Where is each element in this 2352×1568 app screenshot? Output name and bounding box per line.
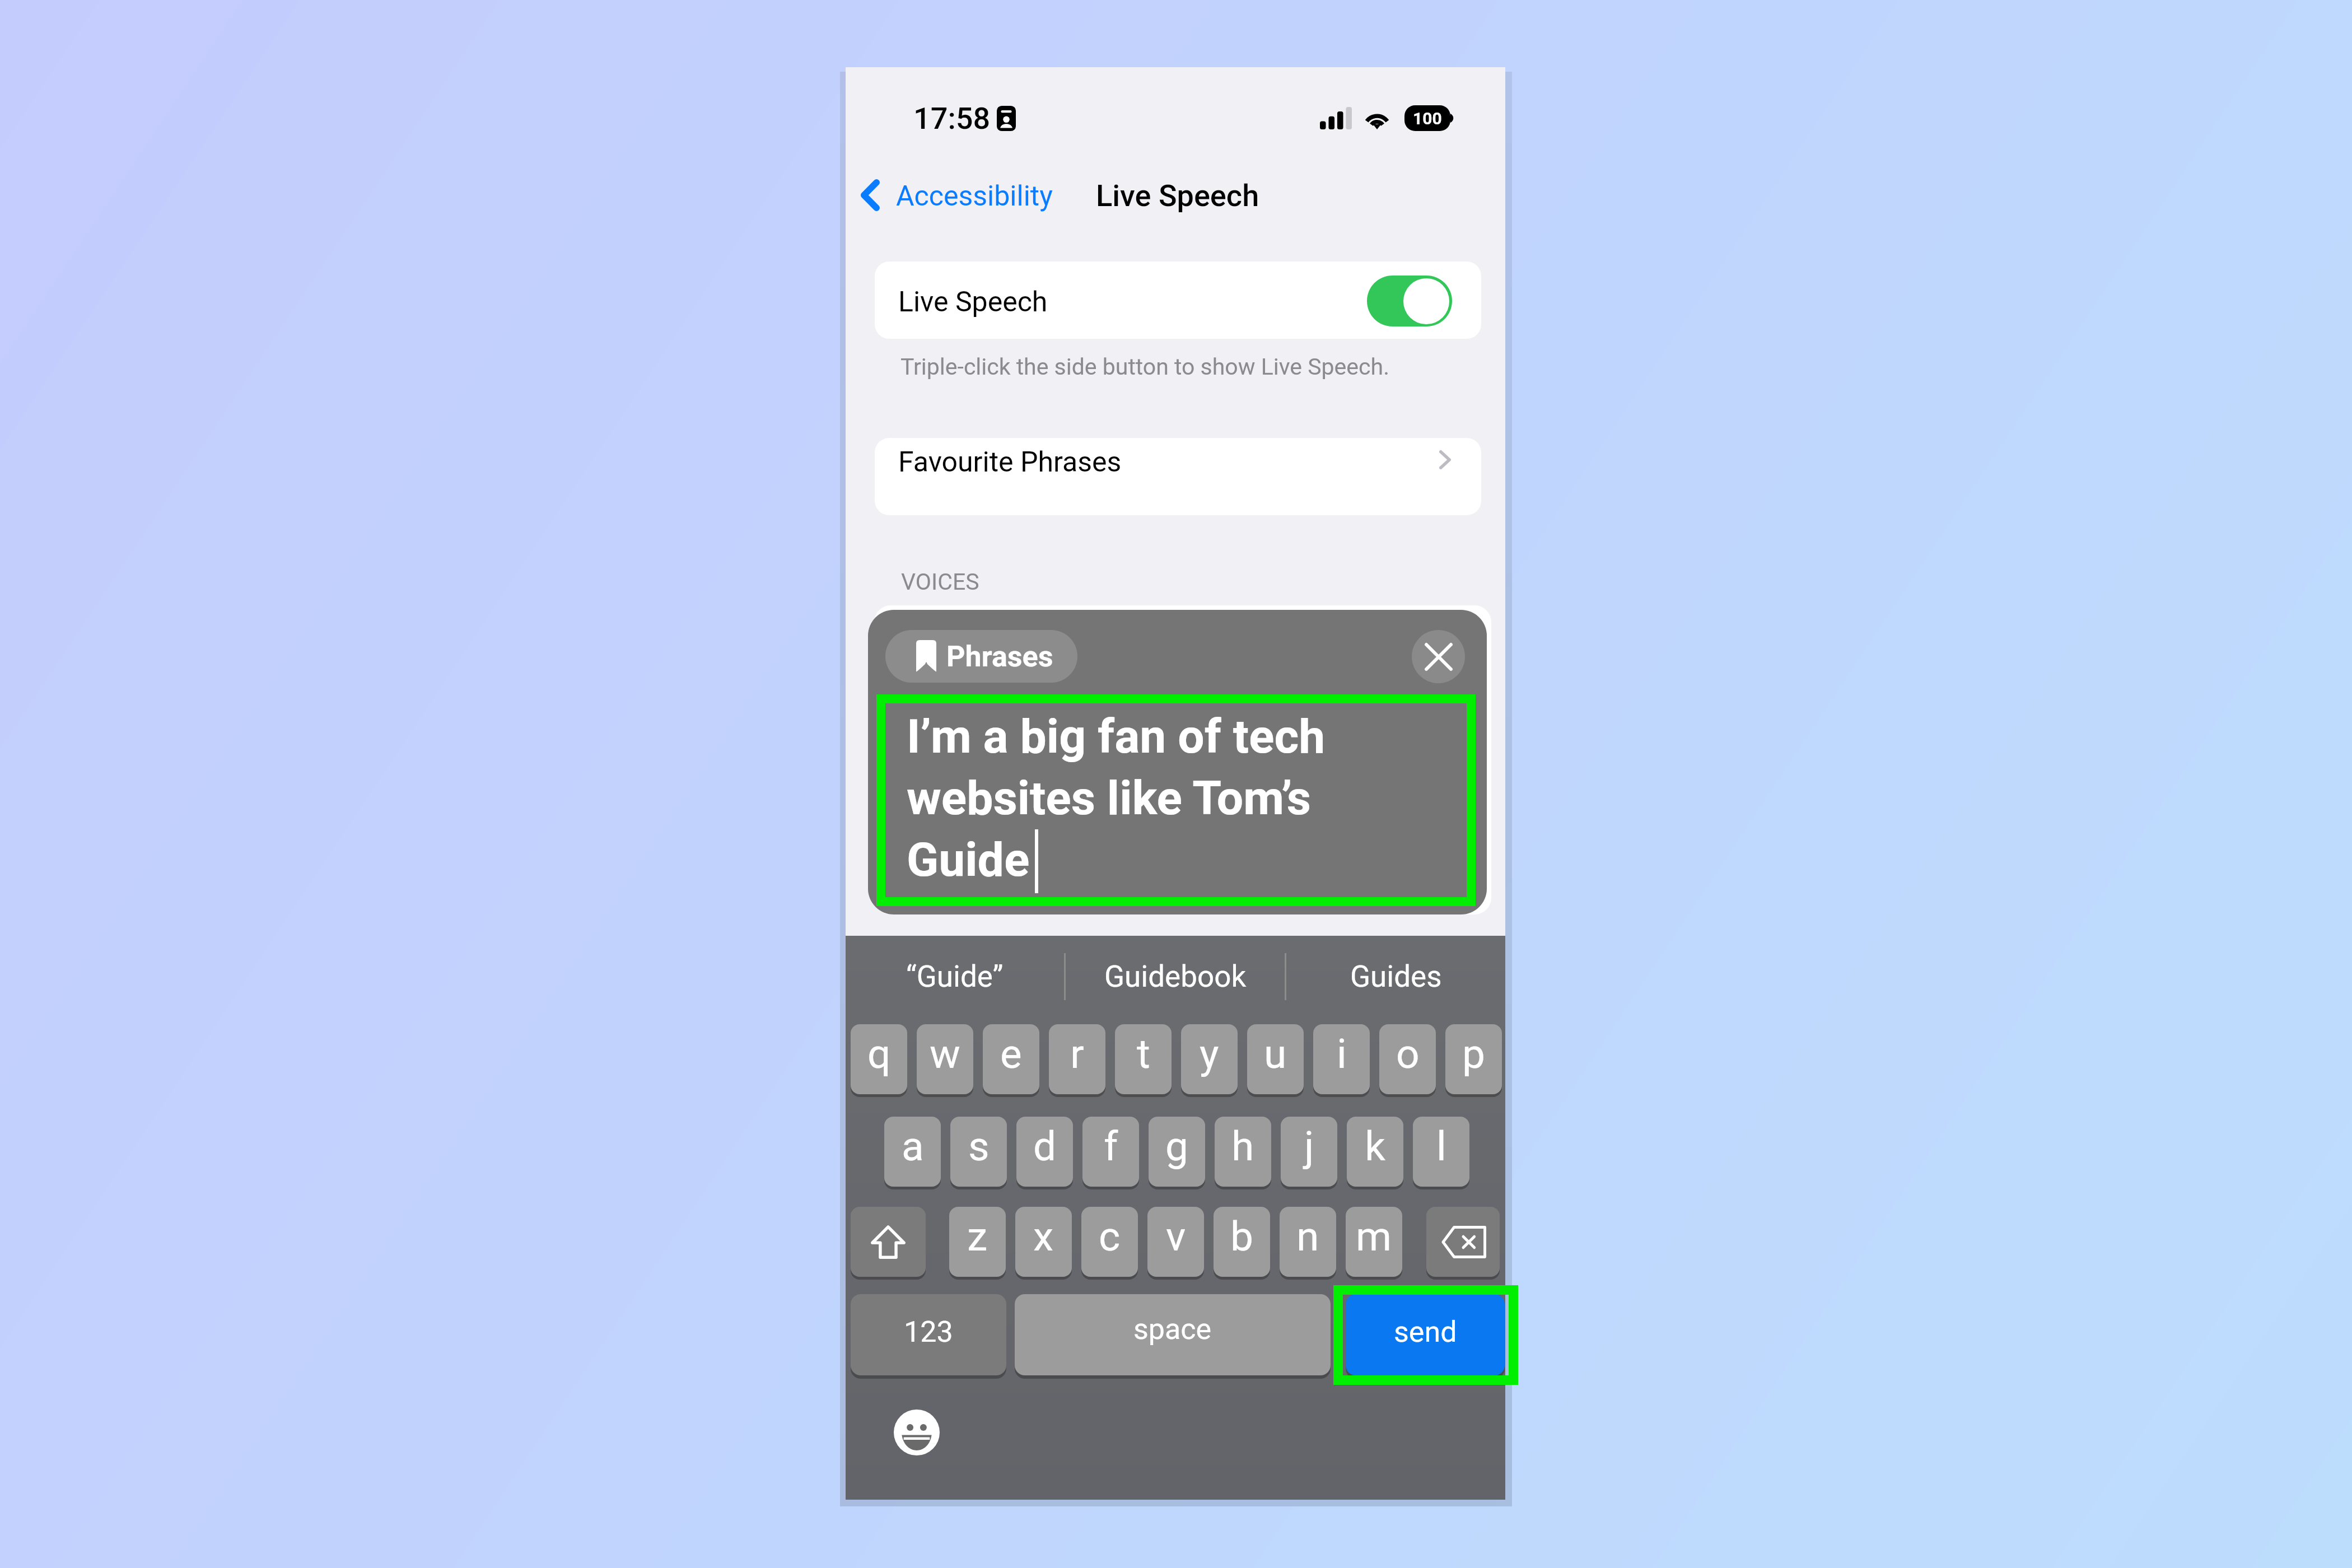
staticText: VOICES — [901, 568, 979, 595]
staticText: space — [1133, 1312, 1212, 1346]
staticText: l — [1436, 1122, 1446, 1170]
button[interactable]: s — [950, 1117, 1007, 1187]
button[interactable]: c — [1081, 1207, 1138, 1277]
staticText: t — [1137, 1030, 1150, 1078]
button[interactable]: Close — [1412, 630, 1465, 683]
button[interactable]: u — [1247, 1024, 1304, 1094]
staticText: s — [968, 1122, 990, 1170]
staticText: c — [1099, 1212, 1121, 1261]
staticText: v — [1166, 1212, 1186, 1261]
staticText: r — [1070, 1030, 1084, 1078]
button[interactable]: y — [1181, 1024, 1238, 1094]
button[interactable]: h — [1215, 1117, 1271, 1187]
staticText: I’m a big fan of tech websites like Tom’… — [907, 709, 1326, 888]
staticText: “Guide” — [906, 959, 1004, 994]
staticText: e — [1000, 1030, 1022, 1078]
button[interactable]: t — [1115, 1024, 1172, 1094]
button[interactable]: Favourite Phrases — [875, 438, 1481, 515]
staticText: x — [1033, 1212, 1054, 1261]
staticText: Guidebook — [1104, 959, 1247, 994]
staticText: u — [1264, 1030, 1287, 1078]
staticText: 100 — [1413, 109, 1442, 128]
staticText: Live Speech — [1096, 178, 1259, 213]
staticText: Favourite Phrases — [898, 446, 1122, 479]
staticText: 17:58 — [913, 101, 991, 136]
staticText: Live Speech — [898, 286, 1048, 319]
button[interactable]: o — [1379, 1024, 1436, 1094]
staticText: y — [1200, 1030, 1219, 1078]
button[interactable]: g — [1149, 1117, 1205, 1187]
staticText: g — [1165, 1122, 1188, 1170]
button[interactable]: d — [1016, 1117, 1073, 1187]
button[interactable]: a — [884, 1117, 941, 1187]
staticText: w — [930, 1030, 960, 1078]
button[interactable]: f — [1082, 1117, 1139, 1187]
button[interactable]: Live Speech — [875, 262, 1481, 339]
button[interactable]: n — [1280, 1207, 1336, 1277]
button[interactable]: send — [1346, 1294, 1505, 1375]
staticText: Phrases — [946, 640, 1053, 674]
button[interactable]: Live Speech on — [1367, 276, 1452, 326]
staticText: o — [1396, 1030, 1420, 1078]
staticText: 123 — [904, 1315, 953, 1349]
button[interactable]: Shift — [851, 1207, 926, 1277]
staticText: q — [867, 1030, 891, 1078]
staticText: p — [1462, 1030, 1485, 1078]
button[interactable]: l — [1413, 1117, 1469, 1187]
button[interactable]: Guidebook — [1066, 936, 1285, 1017]
staticText: Guides — [1350, 959, 1442, 994]
button[interactable]: space — [1015, 1294, 1331, 1375]
button[interactable]: w — [917, 1024, 973, 1094]
staticText: n — [1296, 1212, 1319, 1261]
staticText: a — [902, 1122, 924, 1170]
staticText: k — [1365, 1122, 1385, 1170]
button[interactable]: Back to Accessibility — [858, 171, 1065, 228]
button[interactable]: Backspace — [1426, 1207, 1500, 1277]
button[interactable]: p — [1445, 1024, 1502, 1094]
staticText: i — [1337, 1030, 1347, 1078]
button[interactable]: i — [1313, 1024, 1370, 1094]
button[interactable]: 123 — [851, 1294, 1006, 1375]
staticText: d — [1033, 1122, 1057, 1170]
button[interactable]: x — [1015, 1207, 1072, 1277]
button[interactable]: q — [851, 1024, 907, 1094]
staticText: b — [1230, 1212, 1253, 1261]
staticText: z — [967, 1212, 988, 1261]
button[interactable]: Emoji keyboard — [888, 1403, 946, 1462]
button[interactable]: m — [1346, 1207, 1402, 1277]
staticText: m — [1356, 1212, 1392, 1261]
button[interactable]: v — [1147, 1207, 1204, 1277]
button[interactable]: Guides — [1286, 936, 1505, 1017]
staticText: Triple-click the side button to show Liv… — [900, 353, 1389, 380]
button[interactable]: k — [1347, 1117, 1403, 1187]
staticText: f — [1104, 1122, 1118, 1170]
button[interactable]: j — [1281, 1117, 1337, 1187]
button[interactable]: r — [1049, 1024, 1105, 1094]
staticText: Accessibility — [896, 180, 1053, 213]
staticText: send — [1394, 1315, 1457, 1349]
button[interactable]: “Guide” — [846, 936, 1064, 1017]
button[interactable]: z — [949, 1207, 1006, 1277]
staticText: j — [1304, 1122, 1314, 1170]
button[interactable]: Phrases — [885, 630, 1077, 683]
staticText: h — [1231, 1122, 1254, 1170]
button[interactable]: b — [1214, 1207, 1270, 1277]
button[interactable]: e — [983, 1024, 1039, 1094]
